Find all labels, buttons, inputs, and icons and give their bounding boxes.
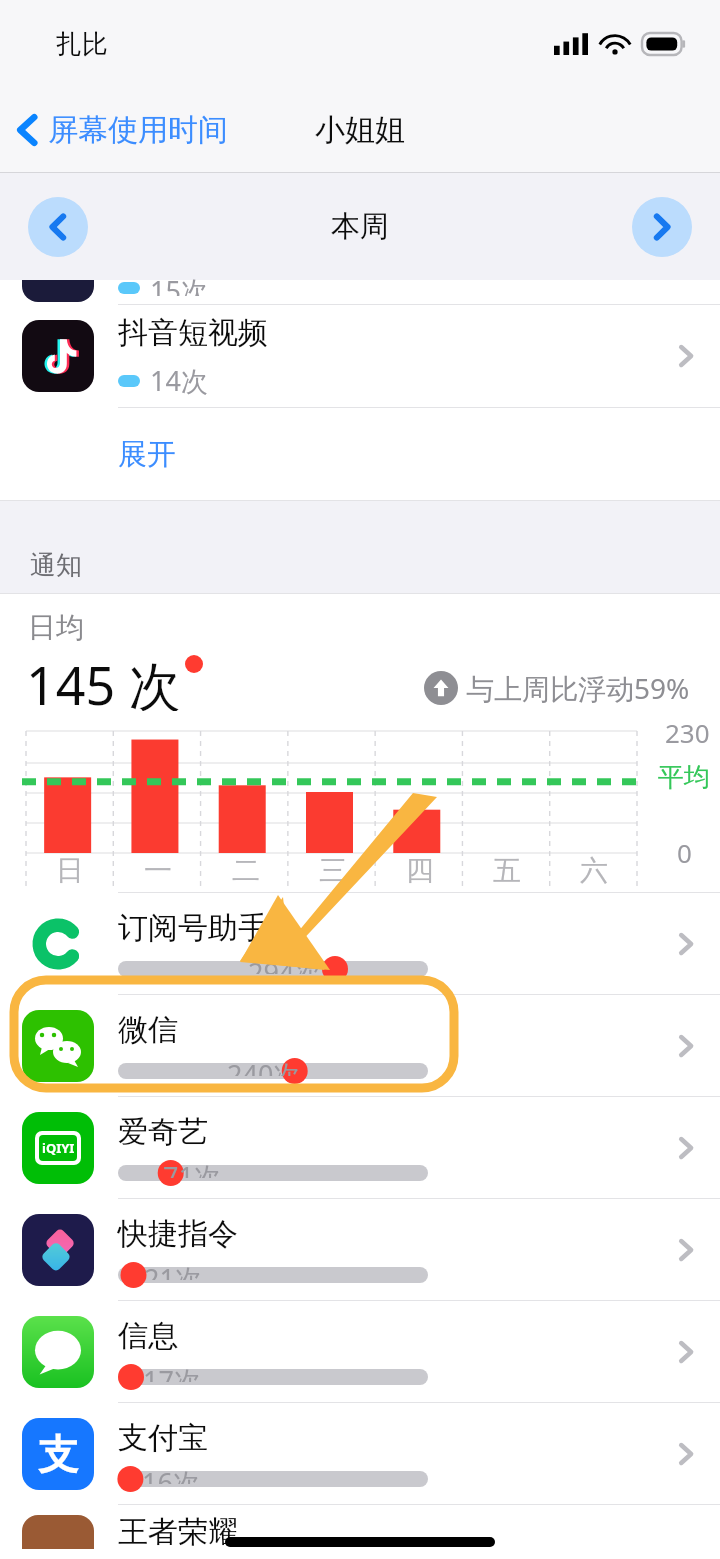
staticText: 六 [580, 853, 608, 888]
staticText: 屏幕使用时间 [48, 111, 228, 149]
button[interactable]: 抖音短视频 [0, 305, 720, 407]
staticText: 一 [144, 853, 172, 888]
staticText: 微信 [118, 1011, 178, 1049]
button[interactable]: Next week [632, 197, 692, 257]
staticText: 16次 [142, 1464, 200, 1484]
button[interactable]: 展开 [0, 408, 720, 500]
staticText: 爱奇艺 [118, 1113, 208, 1151]
staticText: 日 [56, 853, 84, 888]
staticText: 21次 [144, 1260, 202, 1280]
staticText: 订阅号助手 [118, 909, 268, 947]
staticText: 71次 [163, 1158, 221, 1178]
staticText: 15次 [150, 272, 208, 296]
staticText: 王者荣耀 [118, 1513, 238, 1551]
staticText: 本周 [331, 208, 389, 245]
staticText: 展开 [118, 436, 176, 473]
staticText: 小姐姐 [315, 111, 405, 149]
button[interactable]: Previous week [28, 197, 88, 257]
staticText: 240次 [227, 1056, 301, 1076]
staticText: 通知 [30, 549, 82, 582]
staticText: 230 [665, 715, 710, 750]
button[interactable]: 屏幕使用时间 [14, 111, 228, 149]
staticText: 二 [232, 853, 260, 888]
button[interactable]: 订阅号助手 [0, 893, 720, 994]
staticText: 快捷指令 [118, 1215, 238, 1253]
staticText: 14次 [150, 362, 208, 399]
button[interactable]: iQIYI [0, 1097, 720, 1198]
staticText: 17次 [143, 1362, 201, 1382]
staticText: 294次 [248, 954, 322, 974]
staticText: 三 [319, 853, 347, 888]
button[interactable]: 王者荣耀 [0, 1505, 720, 1559]
staticText: 0 [677, 835, 692, 870]
staticText: 四 [406, 853, 434, 888]
staticText: 信息 [118, 1317, 178, 1355]
staticText: iQIYI [42, 1139, 75, 1157]
staticText: 日均 [28, 610, 84, 645]
staticText: 支付宝 [118, 1419, 208, 1457]
button[interactable]: 信息 [0, 1301, 720, 1402]
button[interactable]: 支 [0, 1403, 720, 1504]
staticText: 平均 [658, 761, 710, 794]
staticText: 145 次 [26, 649, 181, 711]
button[interactable]: 微信 [0, 995, 720, 1096]
staticText: 五 [493, 853, 521, 888]
button[interactable]: 快捷指令 [0, 1199, 720, 1300]
staticText: 支 [38, 1429, 78, 1479]
staticText: 扎比 [56, 28, 108, 61]
staticText: 与上周比浮动59% [466, 669, 690, 707]
staticText: 抖音短视频 [118, 314, 268, 352]
